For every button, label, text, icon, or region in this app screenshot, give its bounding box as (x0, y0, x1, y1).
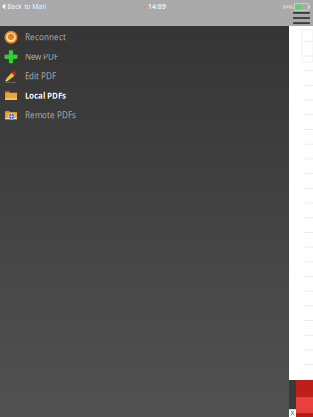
staticText: Edit PDF (25, 71, 56, 81)
button[interactable]: Edit PDF (0, 66, 289, 86)
staticText: Reconnect (25, 32, 66, 42)
button[interactable]: Back to Mail (0, 1, 48, 12)
staticText: Remote PDFs (25, 110, 76, 120)
button[interactable]: Reconnect (0, 27, 289, 47)
button[interactable]: Menu (291, 10, 312, 26)
button[interactable]: Remote PDFs (0, 105, 289, 125)
staticText: Local PDFs (25, 90, 66, 101)
staticText: New PDF (25, 51, 58, 62)
staticText: 94% (283, 3, 293, 11)
button[interactable]: New PDF (0, 47, 289, 66)
button[interactable]: Local PDFs (0, 86, 289, 105)
staticText: Back to Mail (7, 2, 46, 11)
staticText: 14:09 (148, 2, 166, 11)
